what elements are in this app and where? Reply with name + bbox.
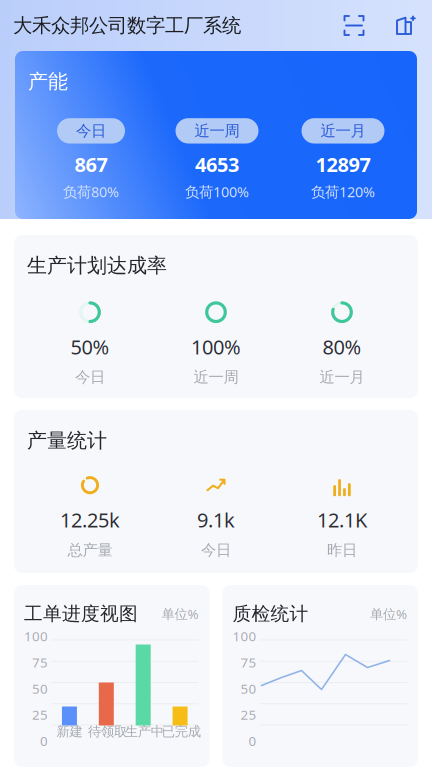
staticText: 80%: [322, 333, 361, 360]
staticText: 单位%: [370, 605, 407, 623]
staticText: 昨日: [327, 540, 357, 560]
staticText: 负荷120%: [311, 182, 375, 201]
staticText: 0: [248, 732, 256, 750]
staticText: 近一月: [319, 367, 364, 387]
staticText: 负荷100%: [185, 182, 249, 201]
staticText: 今日: [201, 540, 231, 560]
staticText: 近一周: [193, 367, 238, 387]
staticText: 75: [240, 653, 256, 671]
staticText: 25: [32, 706, 48, 724]
staticText: 50: [32, 679, 48, 698]
staticText: 产能: [28, 69, 68, 94]
staticText: 12897: [315, 150, 370, 178]
button[interactable]: 报表: [394, 14, 416, 36]
staticText: 75: [32, 653, 48, 671]
staticText: 100%: [191, 333, 241, 360]
staticText: 单位%: [161, 605, 198, 623]
staticText: 今日: [75, 367, 105, 387]
staticText: 新建: [56, 723, 82, 740]
staticText: 12.25k: [60, 506, 120, 533]
staticText: 4653: [195, 150, 239, 178]
staticText: 9.1k: [197, 506, 235, 533]
staticText: 待领取: [88, 723, 127, 740]
staticText: 100: [232, 627, 256, 645]
staticText: 工单进度视图: [24, 602, 138, 625]
staticText: 总产量: [67, 540, 112, 560]
staticText: 生产计划达成率: [27, 253, 167, 278]
staticText: 产量统计: [27, 428, 107, 453]
staticText: 近一月: [320, 121, 365, 140]
staticText: 12.1K: [317, 506, 367, 533]
staticText: 大禾众邦公司数字工厂系统: [13, 13, 241, 38]
staticText: 50%: [70, 333, 109, 360]
staticText: 今日: [76, 121, 106, 140]
staticText: 生产中: [125, 723, 164, 740]
staticText: 质检统计: [232, 602, 308, 625]
staticText: 50: [240, 679, 256, 698]
button[interactable]: 扫一扫: [343, 14, 365, 36]
staticText: 0: [40, 732, 48, 750]
staticText: 867: [74, 150, 107, 178]
staticText: 25: [240, 706, 256, 724]
staticText: 100: [24, 627, 48, 645]
staticText: 近一周: [194, 121, 239, 140]
staticText: 负荷80%: [63, 182, 119, 201]
staticText: 已完成: [162, 723, 201, 740]
